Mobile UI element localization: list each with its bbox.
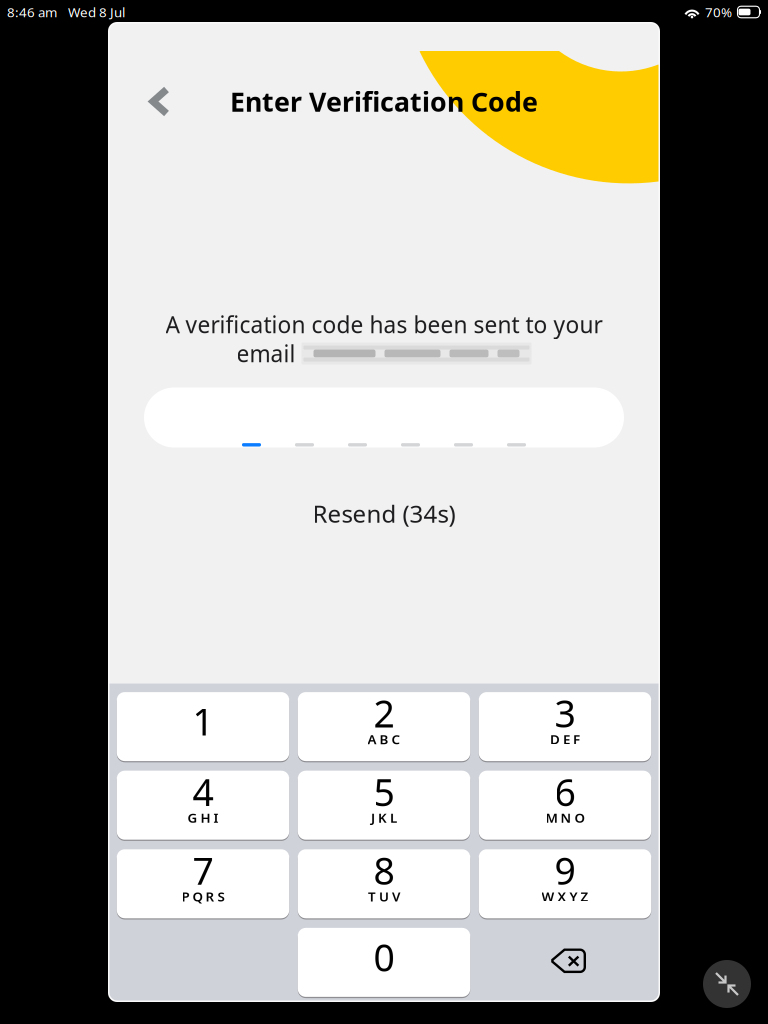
button[interactable]: 7 [117,849,289,918]
staticText: W X Y Z [541,887,588,905]
staticText: M N O [545,809,584,826]
staticText: 8 [373,845,394,895]
button[interactable]: Back [135,76,183,126]
button[interactable]: 1 [117,692,289,761]
staticText: 0 [373,932,394,982]
button[interactable]: 4 [117,771,289,840]
staticText: 7 [192,845,213,895]
staticText: A verification code has been sent to you… [165,309,602,339]
staticText: 5 [373,767,394,816]
staticText: P Q R S [181,887,224,905]
button[interactable]: 0 [298,928,470,997]
staticText: Wed 8 Jul [68,3,125,21]
staticText: 2 [373,688,394,738]
button[interactable]: 3 [479,692,651,761]
button[interactable]: Delete [479,928,651,997]
staticText: Resend (34s) [312,498,455,529]
staticText: Enter Verification Code [230,84,538,119]
staticText: G H I [187,809,218,826]
staticText: 6 [554,767,575,816]
button[interactable]: Scale [703,960,751,1008]
staticText: D E F [550,730,580,748]
staticText: 4 [192,767,213,816]
staticText: email [236,338,295,368]
staticText: 1 [192,696,213,746]
button[interactable]: Resend (34s) [274,496,494,530]
button[interactable]: 9 [479,849,651,918]
button[interactable]: 2 [298,692,470,761]
staticText: 8:46 am [7,3,57,21]
button[interactable]: 5 [298,771,470,840]
staticText: A B C [367,730,400,748]
staticText: J K L [371,809,397,826]
staticText: T U V [368,887,400,905]
staticText: 9 [554,845,575,895]
staticText: 70% [705,3,732,21]
button[interactable]: 6 [479,771,651,840]
staticText: 3 [554,688,575,738]
button[interactable]: 8 [298,849,470,918]
